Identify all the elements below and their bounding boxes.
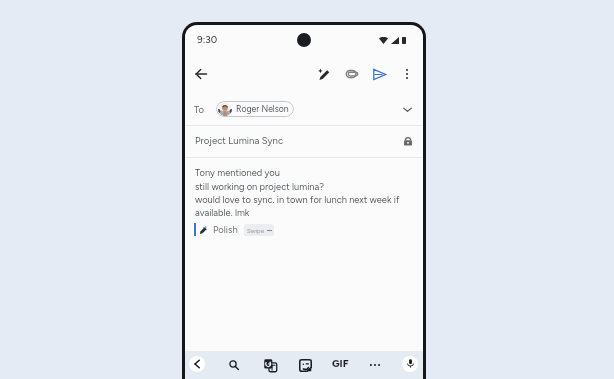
button[interactable]: Project Lumina Sync: [185, 126, 423, 156]
staticText: Polish: [213, 224, 238, 235]
button[interactable]: Show more recipients: [395, 97, 419, 121]
button[interactable]: Search: [224, 355, 244, 375]
staticText: To: [194, 104, 205, 115]
button[interactable]: Polish with AI: [312, 62, 336, 86]
staticText: still working on project lumina?: [195, 181, 324, 192]
staticText: would love to sync. in town for lunch ne…: [195, 194, 400, 205]
button[interactable]: More options: [365, 355, 385, 375]
button[interactable]: Attach file: [340, 62, 364, 86]
staticText: Tony mentioned you: [195, 167, 280, 178]
button[interactable]: Translate: [260, 355, 280, 375]
button[interactable]: Navigate up: [189, 62, 213, 86]
button[interactable]: Send: [367, 62, 391, 86]
button[interactable]: Keyboard back: [189, 356, 205, 372]
button[interactable]: Roger Nelson: [216, 101, 294, 117]
button[interactable]: Polish: [194, 223, 274, 236]
button[interactable]: GIF: [330, 353, 350, 373]
staticText: Swipe: [247, 227, 265, 234]
staticText: GIF: [332, 357, 349, 369]
button[interactable]: Stickers: [295, 355, 315, 375]
staticText: 9:30: [197, 33, 218, 45]
staticText: available. lmk: [195, 207, 250, 218]
staticText: Project Lumina Sync: [195, 135, 284, 147]
button[interactable]: Voice input: [402, 356, 418, 372]
button[interactable]: More options: [395, 62, 419, 86]
staticText: Roger Nelson: [236, 104, 289, 114]
